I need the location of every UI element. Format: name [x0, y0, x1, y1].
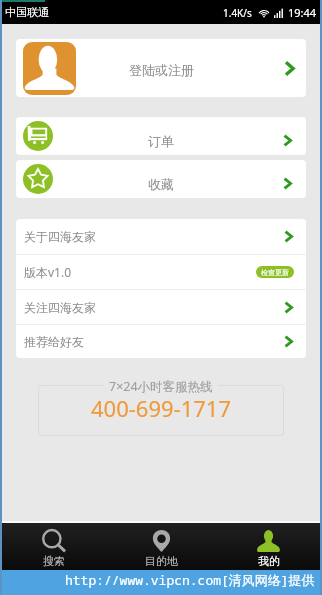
other: Login or register — [283, 59, 296, 78]
button[interactable]: Login or register — [16, 39, 306, 97]
staticText: 版本v1.0 — [24, 264, 72, 280]
other: Search — [43, 530, 66, 552]
button[interactable]: Favorites — [16, 160, 306, 198]
button[interactable]: 400-699-1717 — [16, 381, 306, 435]
staticText: 推荐给好友 — [24, 334, 84, 349]
staticText: 我的 — [258, 554, 280, 568]
other: 关注四海友家 — [283, 300, 294, 315]
staticText: 中国联通 — [5, 5, 49, 19]
staticText: 19:44 — [288, 5, 317, 20]
staticText: 关注四海友家 — [24, 300, 96, 315]
staticText: 关于四海友家 — [24, 229, 96, 244]
button[interactable]: 关于四海友家 — [16, 219, 306, 254]
other: Mine — [257, 530, 280, 552]
other: Orders — [282, 133, 293, 148]
staticText: 7×24小时客服热线 — [109, 378, 213, 395]
staticText: 订单 — [148, 133, 174, 149]
other: 推荐给好友 — [283, 334, 294, 349]
staticText: 登陆或注册 — [129, 62, 194, 78]
other: Favorites — [282, 176, 293, 191]
button[interactable]: Mine — [215, 523, 322, 570]
button[interactable]: 版本v1.0 — [16, 255, 306, 289]
other: Destination — [150, 530, 173, 552]
staticText: 目的地 — [145, 554, 178, 568]
staticText: 检查更新 — [261, 268, 289, 277]
staticText: 400-699-1717 — [91, 393, 232, 423]
button[interactable]: Orders — [16, 117, 306, 155]
button[interactable]: 推荐给好友 — [16, 325, 306, 358]
other: 关于四海友家 — [283, 229, 294, 244]
button[interactable]: Destination — [108, 523, 215, 570]
staticText: http://www.vipcn.com[清风网络]提供 — [65, 571, 315, 589]
button[interactable]: 关注四海友家 — [16, 290, 306, 324]
staticText: 搜索 — [43, 554, 65, 568]
button[interactable]: Search — [0, 523, 108, 570]
staticText: 1.4K/s — [223, 6, 252, 20]
button[interactable]: 检查更新 — [261, 266, 289, 278]
staticText: 收藏 — [148, 176, 174, 192]
